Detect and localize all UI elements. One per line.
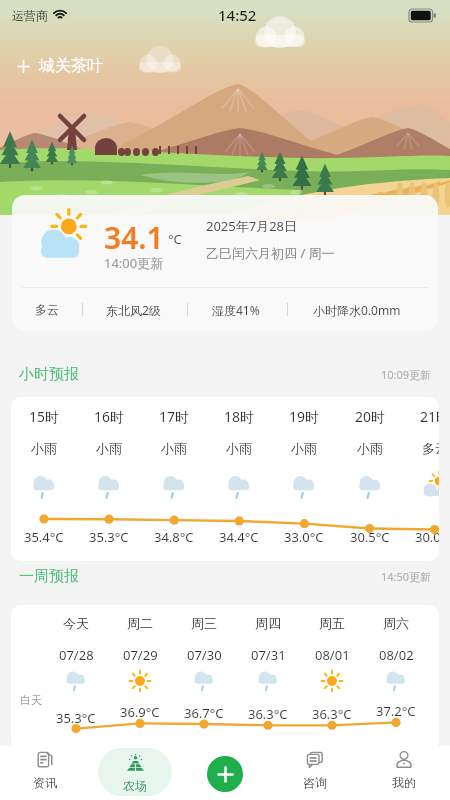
button[interactable]: 添加 bbox=[207, 756, 243, 792]
staticText: 周三 bbox=[191, 615, 217, 631]
staticText: 07/30 bbox=[187, 646, 222, 664]
staticText: 15时 bbox=[29, 407, 60, 426]
staticText: 我的 bbox=[392, 775, 416, 790]
staticText: 白天 bbox=[20, 693, 42, 707]
button[interactable]: 农场 bbox=[98, 748, 172, 796]
staticText: 19时 bbox=[289, 407, 320, 426]
staticText: 小时预报 bbox=[19, 365, 79, 384]
staticText: 20时 bbox=[355, 407, 386, 426]
staticText: 周五 bbox=[319, 615, 345, 631]
staticText: 10:09更新 bbox=[381, 367, 432, 382]
staticText: 资讯 bbox=[33, 775, 57, 790]
button[interactable]: 城关茶叶 bbox=[16, 56, 103, 76]
staticText: 小雨 bbox=[357, 440, 383, 456]
staticText: 多云 bbox=[422, 440, 439, 456]
button[interactable]: 咨询 bbox=[289, 750, 341, 798]
staticText: 湿度41% bbox=[212, 302, 260, 318]
staticText: 16时 bbox=[94, 407, 125, 426]
staticText: 14:00更新 bbox=[104, 254, 164, 272]
staticText: 36.3°C bbox=[312, 705, 352, 723]
staticText: 运营商 bbox=[12, 8, 48, 23]
staticText: 14:52 bbox=[218, 5, 257, 25]
staticText: 07/31 bbox=[251, 646, 286, 664]
staticText: 36.7°C bbox=[184, 704, 224, 722]
staticText: 34.1 bbox=[104, 217, 164, 258]
staticText: 30.5°C bbox=[350, 528, 390, 546]
staticText: 35.3°C bbox=[89, 528, 129, 546]
staticText: 小雨 bbox=[291, 440, 317, 456]
staticText: 37.2°C bbox=[376, 702, 416, 720]
staticText: 35.4°C bbox=[24, 528, 64, 546]
staticText: 东北风2级 bbox=[106, 302, 161, 318]
staticText: 07/29 bbox=[123, 646, 158, 664]
staticText: 咨询 bbox=[303, 775, 327, 790]
staticText: 多云 bbox=[35, 302, 59, 317]
staticText: 33.0°C bbox=[284, 528, 324, 546]
staticText: 34.8°C bbox=[154, 528, 194, 546]
button[interactable]: 我的 bbox=[378, 750, 430, 798]
staticText: 21时 bbox=[420, 407, 439, 426]
staticText: 小雨 bbox=[31, 440, 57, 456]
staticText: 08/01 bbox=[315, 646, 350, 664]
staticText: 小雨 bbox=[226, 440, 252, 456]
staticText: 18时 bbox=[224, 407, 255, 426]
staticText: 周二 bbox=[127, 615, 153, 631]
staticText: 17时 bbox=[159, 407, 190, 426]
button[interactable]: 资讯 bbox=[19, 750, 71, 798]
staticText: 36.9°C bbox=[120, 703, 160, 721]
staticText: 周六 bbox=[383, 615, 409, 631]
staticText: 14:50更新 bbox=[381, 569, 432, 584]
staticText: 一周预报 bbox=[19, 567, 79, 586]
staticText: 城关茶叶 bbox=[39, 56, 103, 76]
staticText: 07/28 bbox=[59, 646, 94, 664]
staticText: 2025年7月28日 bbox=[206, 217, 298, 235]
staticText: 农场 bbox=[123, 778, 147, 793]
staticText: 乙巳闰六月初四 / 周一 bbox=[206, 244, 335, 262]
staticText: 36.3°C bbox=[248, 705, 288, 723]
staticText: 小时降水0.0mm bbox=[313, 302, 401, 318]
staticText: °C bbox=[168, 230, 182, 248]
staticText: 今天 bbox=[63, 615, 89, 631]
staticText: 08/02 bbox=[379, 646, 414, 664]
staticText: 30.0°C bbox=[415, 528, 439, 546]
staticText: 34.4°C bbox=[219, 528, 259, 546]
staticText: 小雨 bbox=[161, 440, 187, 456]
staticText: 35.3°C bbox=[56, 709, 96, 727]
staticText: 小雨 bbox=[96, 440, 122, 456]
staticText: 周四 bbox=[255, 615, 281, 631]
